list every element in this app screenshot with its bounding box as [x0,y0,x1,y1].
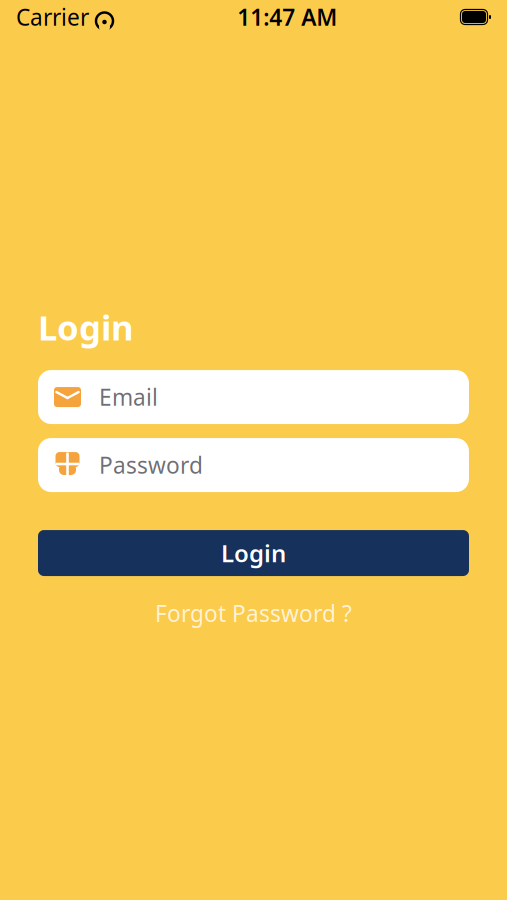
button[interactable]: Forgot Password ? [38,586,469,640]
staticText: Password [99,450,203,480]
staticText: 11:47 AM [237,2,337,32]
staticText: Forgot Password ? [155,598,352,628]
staticText: Login [38,304,134,350]
button[interactable]: Email [38,370,469,424]
button[interactable]: Password [38,438,469,492]
staticText: Email [99,382,158,412]
staticText: Carrier [16,2,89,32]
button[interactable]: Login [38,530,469,576]
staticText: Login [221,537,286,569]
